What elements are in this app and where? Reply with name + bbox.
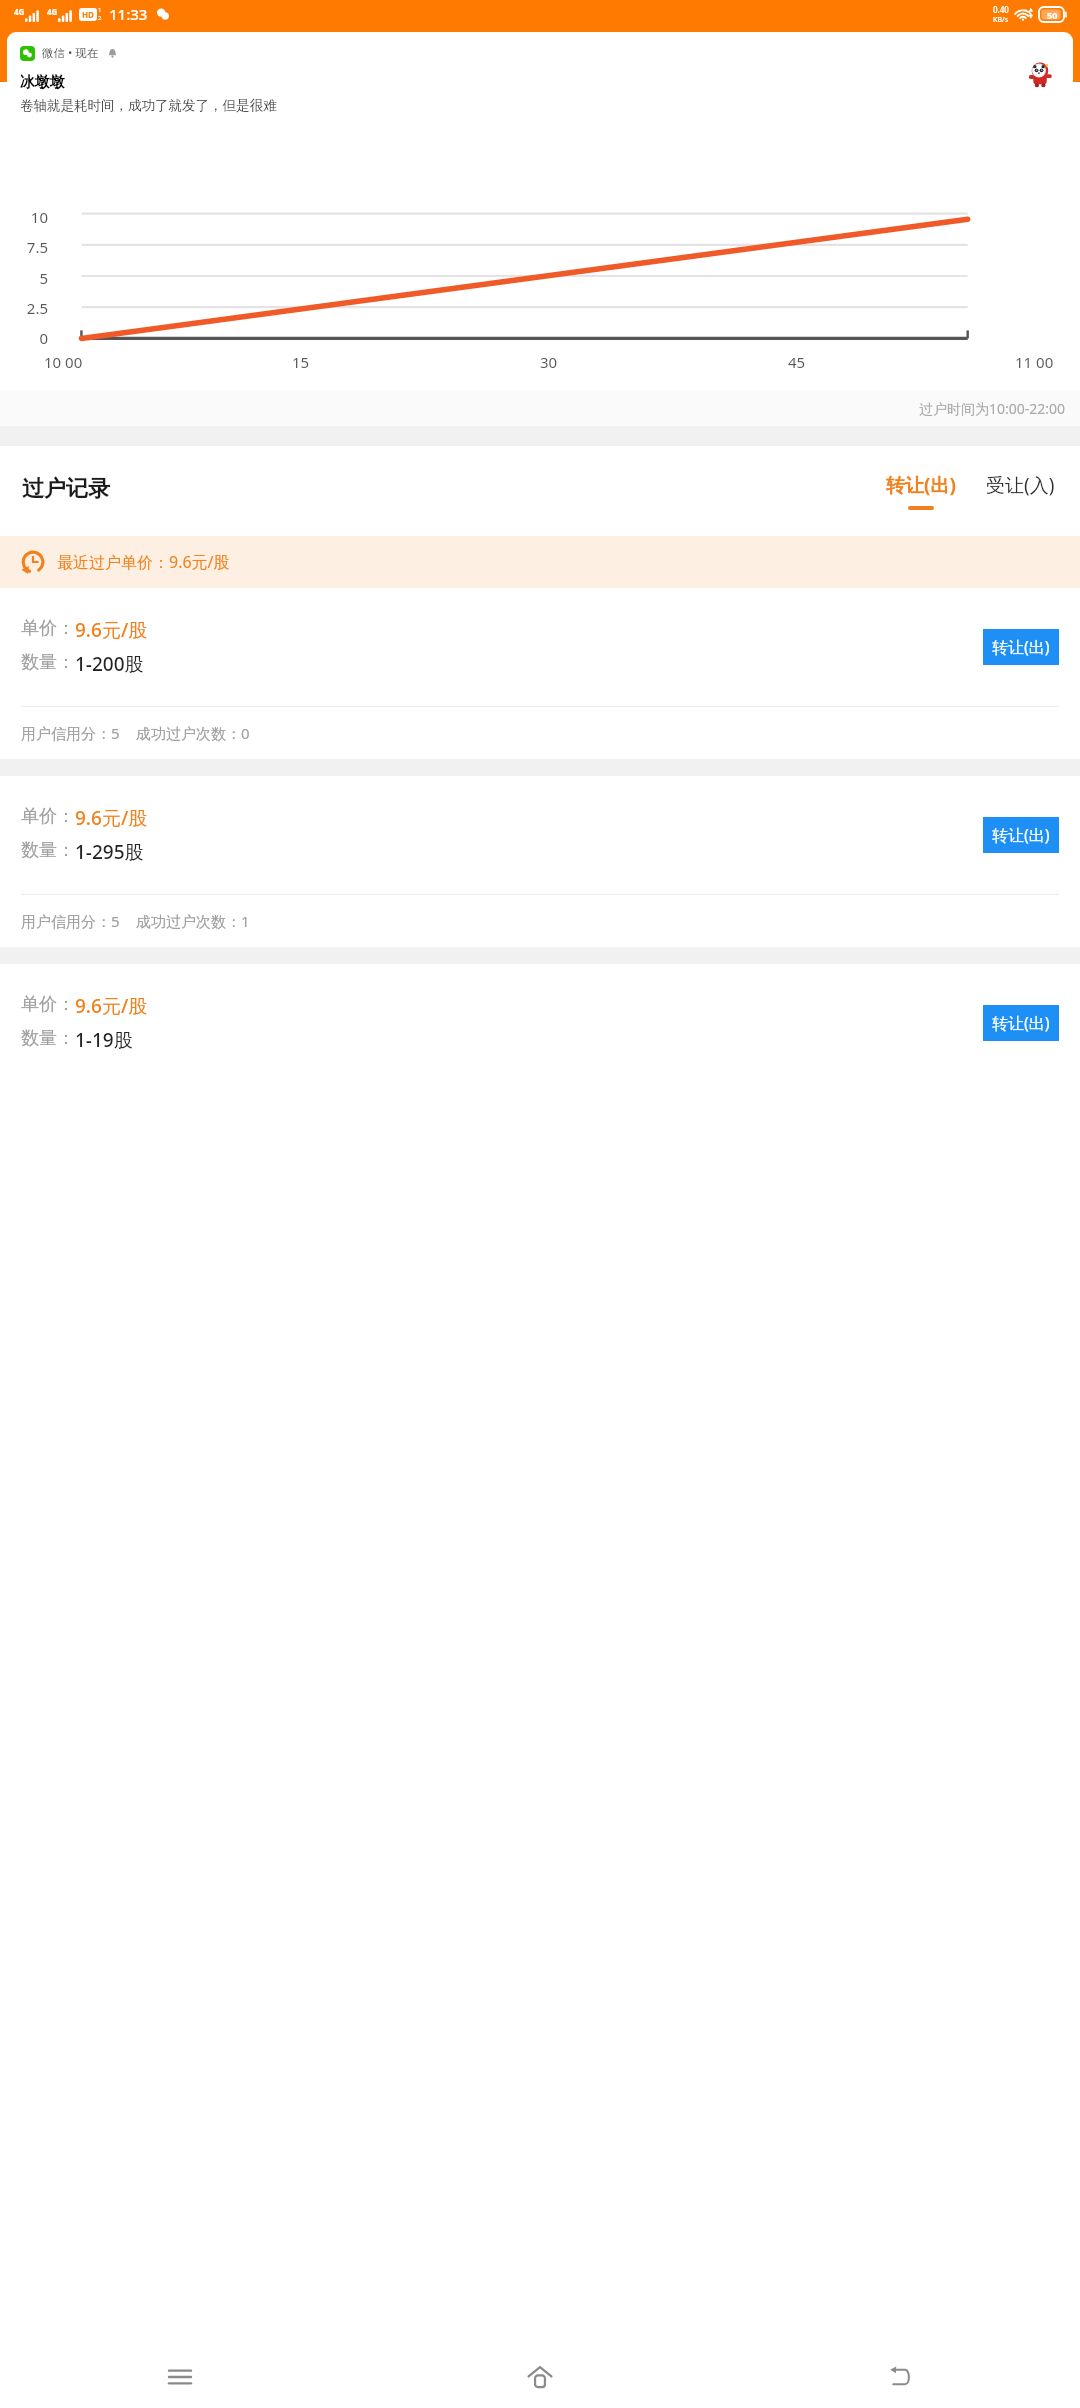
- staticText: HD: [82, 9, 94, 20]
- staticText: 受让(入): [986, 472, 1055, 498]
- staticText: 11:33: [109, 4, 148, 24]
- staticText: 转让(出): [992, 1012, 1050, 1034]
- button[interactable]: Recent apps: [0, 2346, 360, 2408]
- staticText: 5: [39, 268, 48, 288]
- staticText: 10: [30, 207, 48, 227]
- button[interactable]: 单价：: [0, 964, 1080, 1082]
- staticText: 1-19股: [75, 1027, 133, 1053]
- staticText: 11 00: [1015, 352, 1054, 372]
- button[interactable]: Back: [720, 2346, 1080, 2408]
- staticText: 0: [39, 328, 48, 348]
- staticText: 过户时间为10:00-22:00: [919, 399, 1066, 418]
- staticText: 9.6元/股: [75, 993, 148, 1019]
- staticText: 数量：: [21, 1027, 75, 1050]
- staticText: 1-200股: [75, 651, 144, 677]
- staticText: 0.40: [993, 4, 1009, 15]
- staticText: 用户信用分：5: [21, 911, 120, 931]
- staticText: 45: [788, 352, 806, 372]
- button[interactable]: 受让(入): [981, 470, 1060, 512]
- staticText: 4G: [47, 6, 58, 17]
- staticText: 7.5: [26, 237, 48, 257]
- staticText: 过户记录: [22, 475, 110, 503]
- staticText: 成功过户次数：1: [136, 911, 250, 931]
- staticText: 9.6元/股: [75, 805, 148, 831]
- staticText: 冰墩墩: [20, 73, 65, 92]
- staticText: 微信 • 现在: [42, 45, 99, 61]
- staticText: 15: [292, 352, 310, 372]
- button[interactable]: 最近过户单价：9.6元/股: [0, 536, 1080, 588]
- staticText: 单价：: [21, 805, 75, 828]
- button[interactable]: 微信 • 现在: [7, 32, 1073, 126]
- staticText: 单价：: [21, 993, 75, 1016]
- button[interactable]: 转让(出): [983, 1005, 1059, 1041]
- button[interactable]: 单价：: [0, 776, 1080, 947]
- staticText: KB/s: [993, 15, 1009, 25]
- staticText: 10 00: [44, 352, 83, 372]
- staticText: 1-295股: [75, 839, 144, 865]
- staticText: 1: [98, 6, 102, 14]
- staticText: 2: [98, 14, 102, 22]
- staticText: 30: [540, 352, 558, 372]
- staticText: 9.6元/股: [75, 617, 148, 643]
- button[interactable]: 单价：: [0, 588, 1080, 759]
- staticText: 转让(出): [992, 636, 1050, 658]
- button[interactable]: 转让(出): [983, 817, 1059, 853]
- staticText: 50: [1047, 9, 1058, 21]
- staticText: 转让(出): [992, 824, 1050, 846]
- button[interactable]: Home: [360, 2346, 720, 2408]
- staticText: 用户信用分：5: [21, 723, 120, 743]
- staticText: 4G: [14, 6, 25, 17]
- staticText: 转让(出): [886, 472, 956, 498]
- staticText: 2.5: [26, 298, 48, 318]
- staticText: 数量：: [21, 651, 75, 674]
- staticText: 卷轴就是耗时间，成功了就发了，但是很难: [20, 97, 277, 114]
- button[interactable]: 转让(出): [983, 629, 1059, 665]
- staticText: 成功过户次数：0: [136, 723, 250, 743]
- button[interactable]: 转让(出): [881, 470, 961, 512]
- staticText: 数量：: [21, 839, 75, 862]
- staticText: 单价：: [21, 617, 75, 640]
- staticText: 最近过户单价：9.6元/股: [57, 551, 230, 573]
